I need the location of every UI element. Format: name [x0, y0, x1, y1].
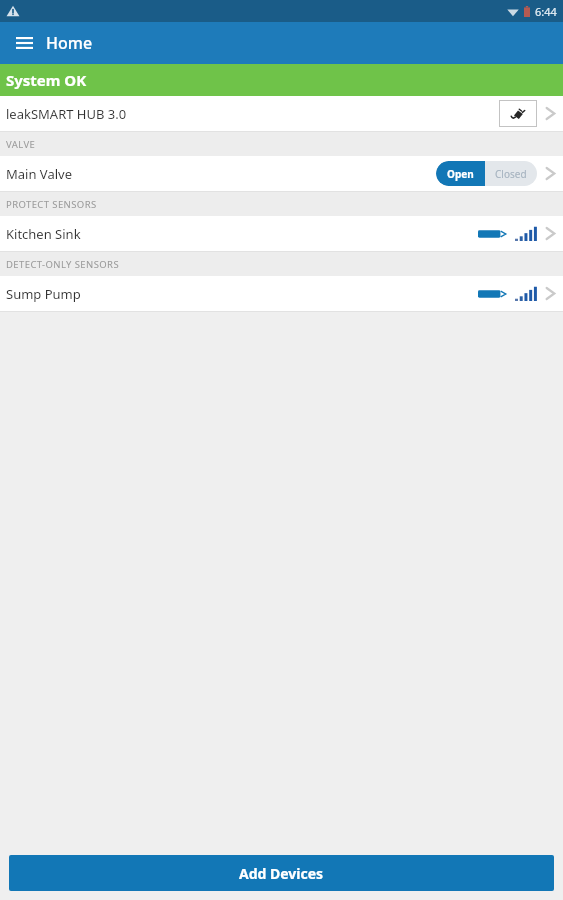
other: Battery level	[478, 227, 506, 241]
staticText: Add Devices	[239, 864, 324, 883]
other: Signal strength	[515, 226, 537, 241]
staticText: Main Valve	[6, 165, 72, 183]
button[interactable]: Hub power status	[499, 100, 537, 127]
button[interactable]: Kitchen Sink	[0, 216, 563, 251]
button[interactable]: Sump Pump	[0, 276, 563, 311]
staticText: 6:44	[535, 4, 557, 19]
staticText: Home	[46, 32, 93, 54]
button[interactable]: leakSMART HUB 3.0	[0, 96, 563, 131]
staticText: VALVE	[6, 138, 36, 151]
staticText: Closed	[495, 167, 527, 181]
button[interactable]: Open	[436, 161, 485, 186]
staticText: Kitchen Sink	[6, 225, 81, 243]
other: Signal strength	[515, 286, 537, 301]
button[interactable]: Main Valve	[0, 156, 563, 191]
staticText: PROTECT SENSORS	[6, 198, 97, 211]
button[interactable]: Open navigation drawer	[6, 25, 42, 61]
button[interactable]: Add Devices	[9, 855, 554, 891]
staticText: System OK	[6, 70, 87, 90]
button[interactable]: System OK	[0, 64, 563, 96]
staticText: Sump Pump	[6, 285, 81, 303]
staticText: DETECT-ONLY SENSORS	[6, 258, 120, 271]
staticText: leakSMART HUB 3.0	[6, 105, 127, 123]
other: Battery level	[478, 287, 506, 301]
staticText: Open	[447, 167, 474, 181]
button[interactable]: Closed	[485, 161, 537, 186]
